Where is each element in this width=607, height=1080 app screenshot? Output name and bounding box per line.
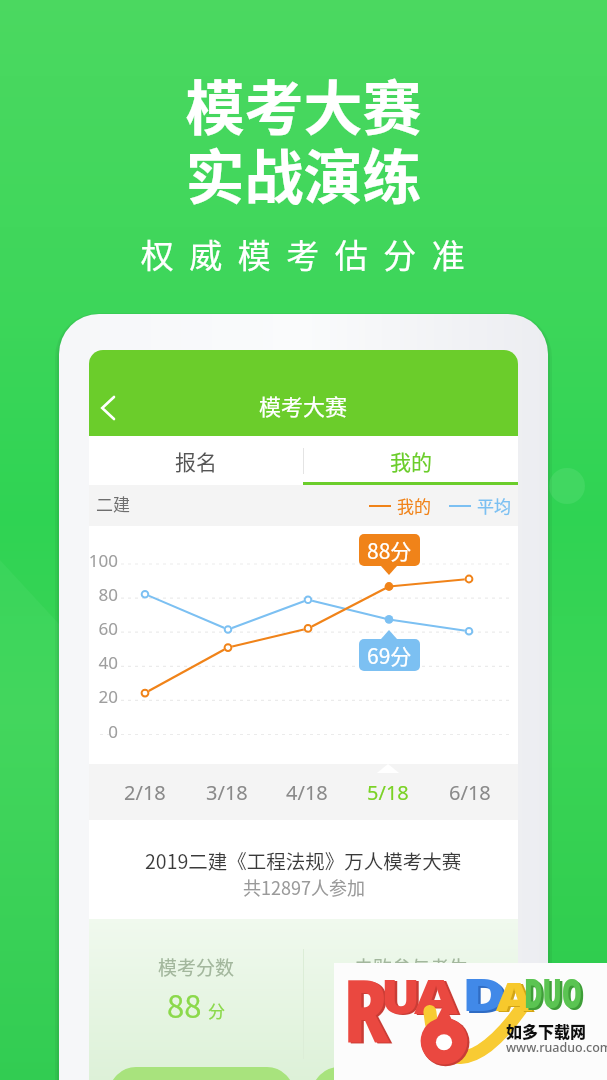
staticText: 5/18 [367,779,409,806]
staticText: 60 [89,617,118,640]
staticText: 2019二建《工程法规》万人模考大赛 [145,846,462,874]
staticText: 我的 [397,493,431,518]
staticText: 20 [89,685,118,708]
button[interactable]: 报名 [89,436,303,485]
staticText: 平均 [477,493,511,518]
button[interactable]: 查看排名 [312,1067,498,1080]
staticText: 88分 [367,535,412,565]
staticText: 40 [89,651,118,674]
button[interactable]: 3/18 [197,764,257,820]
button[interactable]: 4/18 [277,764,337,820]
staticText: 模考分数 [158,953,235,981]
staticText: 100 [89,549,118,572]
button[interactable]: 6/18 [440,764,500,820]
button[interactable]: Back [89,387,128,429]
staticText: 88 [167,982,202,1027]
staticText: 二建 [96,491,130,516]
staticText: 模考大赛 [0,62,607,147]
staticText: 69分 [367,640,412,670]
button[interactable]: 2/18 [115,764,175,820]
staticText: 击败参与考生 [354,953,469,981]
staticText: www.ruaduo.com [506,1039,607,1056]
staticText: 共12897人参加 [243,874,365,900]
staticText: 我的 [390,446,432,476]
staticText: 报名 [175,446,217,476]
staticText: 80 [89,583,118,606]
staticText: 权威模考估分准 [7,230,607,278]
staticText: 实战演练 [0,131,607,216]
staticText: 3/18 [206,779,248,806]
button[interactable]: 5/18 [358,764,418,820]
button[interactable]: 查看解析 [109,1067,294,1080]
button[interactable]: 我的 [303,436,518,485]
staticText: 0 [89,720,118,743]
staticText: 2/18 [124,779,166,806]
staticText: 模考大赛 [259,389,348,421]
staticText: 6/18 [449,779,491,806]
staticText: 4/18 [286,779,328,806]
staticText: 分 [208,998,225,1023]
staticText: 如多下载网 [506,1019,587,1042]
